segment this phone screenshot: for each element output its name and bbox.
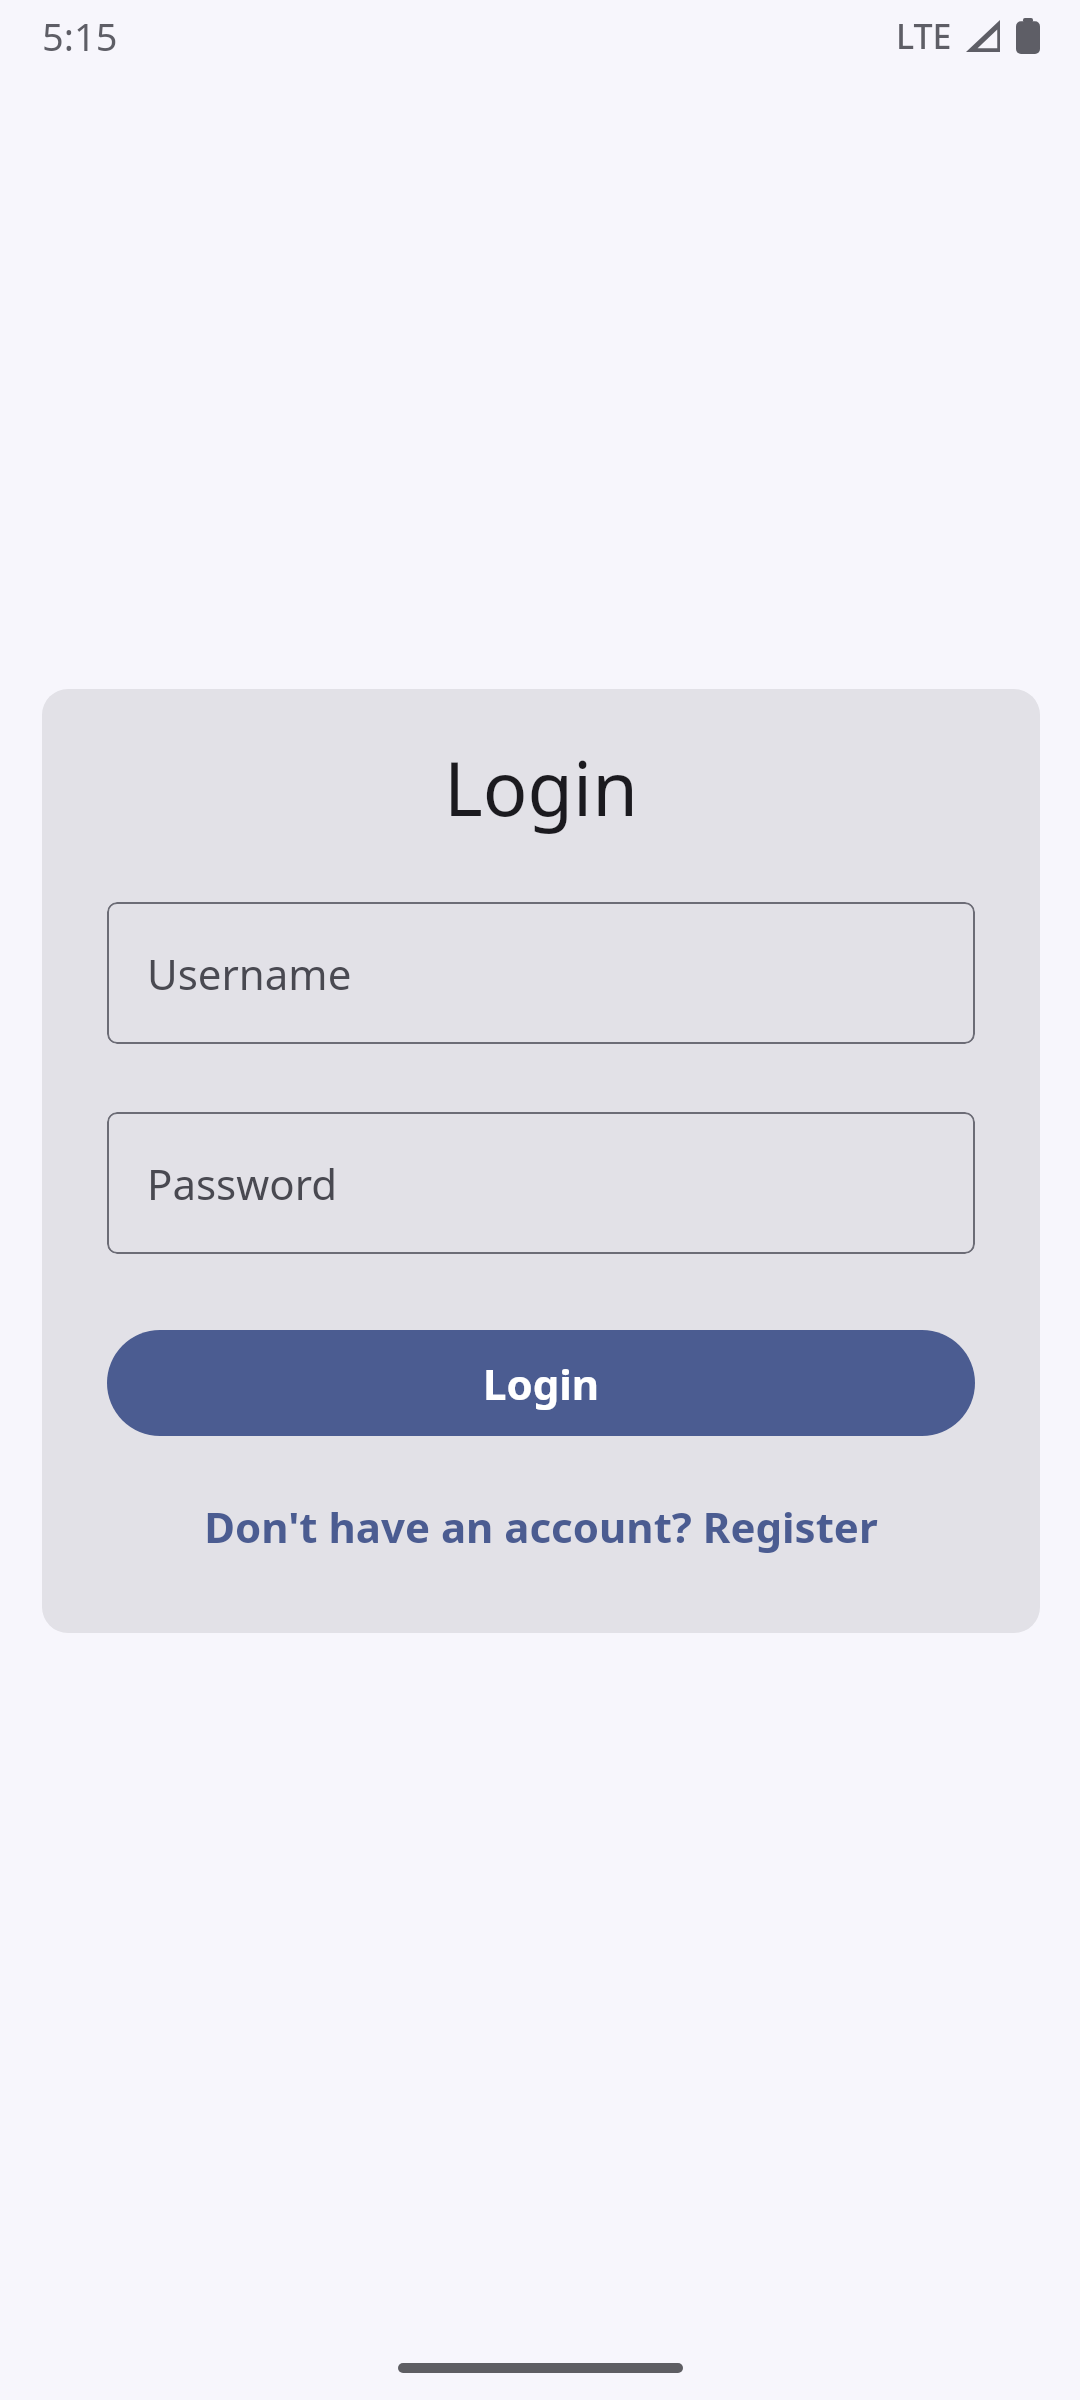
button[interactable]: Username <box>107 902 975 1044</box>
staticText: Don't have an account? Register <box>204 1498 878 1555</box>
button[interactable]: Password <box>107 1112 975 1254</box>
staticText: 5:15 <box>42 10 118 62</box>
button[interactable]: Login <box>107 1330 975 1436</box>
staticText: Password <box>147 1155 337 1212</box>
staticText: LTE <box>896 13 952 59</box>
staticText: Login <box>483 1355 600 1412</box>
staticText: Username <box>147 945 352 1002</box>
staticText: Login <box>107 737 975 838</box>
button[interactable]: Don't have an account? Register <box>107 1498 975 1555</box>
